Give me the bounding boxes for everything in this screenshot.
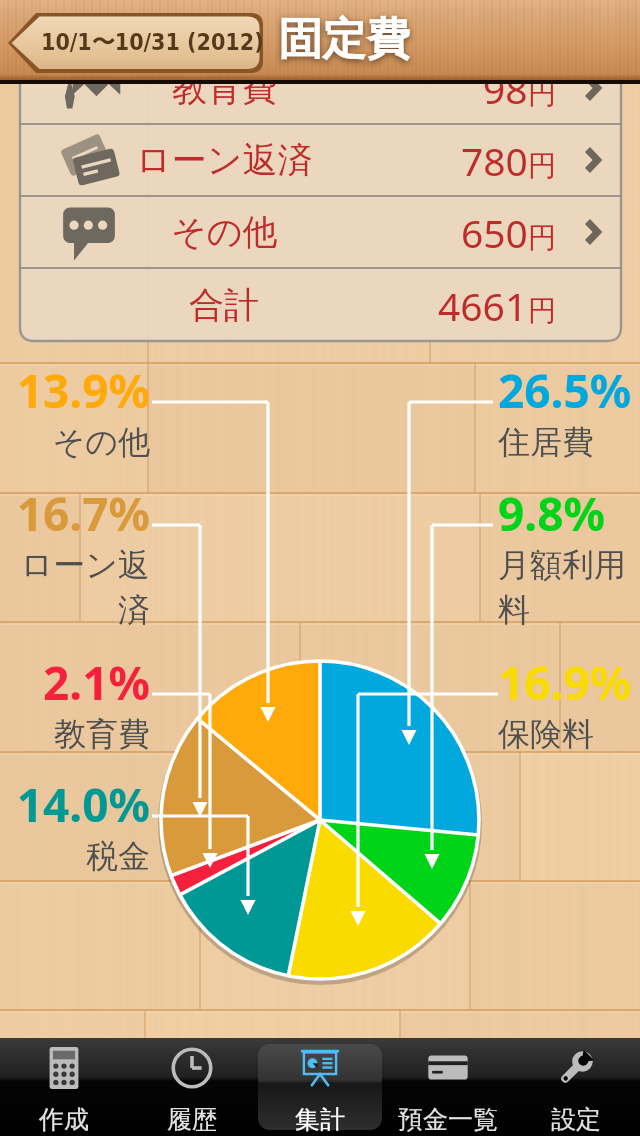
staticText: 4661 <box>438 279 528 332</box>
button[interactable]: 集計 <box>256 1038 384 1136</box>
staticText: 作成 <box>39 1104 89 1135</box>
staticText: 教育費 <box>172 66 277 110</box>
staticText: 税金 <box>86 836 150 876</box>
staticText: 履歴 <box>167 1104 217 1135</box>
staticText: 9.8% <box>498 482 606 545</box>
staticText: ローン返済 <box>136 138 313 182</box>
staticText: 保険料 <box>498 714 594 754</box>
staticText: 98 <box>483 62 528 115</box>
staticText: 円 <box>528 76 556 111</box>
staticText: 円 <box>528 293 556 328</box>
staticText: その他 <box>52 422 150 462</box>
staticText: 集計 <box>295 1104 345 1135</box>
staticText: 16.7% <box>16 482 150 545</box>
staticText: 13.9% <box>16 359 150 422</box>
staticText: 月額利用 料 <box>498 545 626 630</box>
button[interactable]: その他 <box>20 197 621 267</box>
staticText: 26.5% <box>498 359 632 422</box>
button[interactable]: 設定 <box>512 1038 640 1136</box>
staticText: 16.9% <box>498 651 632 714</box>
button[interactable]: 作成 <box>0 1038 128 1136</box>
button[interactable]: ローン返済 <box>20 125 621 195</box>
staticText: 10/1〜10/31 (2012) <box>41 28 264 57</box>
staticText: 住居費 <box>498 422 594 462</box>
staticText: ローン返 済 <box>20 545 150 630</box>
staticText: 650 <box>461 206 528 259</box>
staticText: 教育費 <box>54 714 150 754</box>
button[interactable]: 教育費 <box>20 53 621 123</box>
staticText: 2.1% <box>42 651 150 714</box>
staticText: 780 <box>461 134 528 187</box>
button[interactable]: 預金一覧 <box>384 1038 512 1136</box>
staticText: 円 <box>528 148 556 183</box>
staticText: 預金一覧 <box>398 1104 498 1135</box>
button[interactable]: 合計 <box>20 269 621 341</box>
staticText: その他 <box>171 210 278 254</box>
staticText: 円 <box>528 220 556 255</box>
button[interactable]: 履歴 <box>128 1038 256 1136</box>
staticText: 固定費 <box>278 12 410 67</box>
button[interactable]: Previous period <box>8 13 263 73</box>
staticText: 14.0% <box>16 773 150 836</box>
staticText: 合計 <box>189 283 259 327</box>
staticText: 設定 <box>551 1104 601 1135</box>
